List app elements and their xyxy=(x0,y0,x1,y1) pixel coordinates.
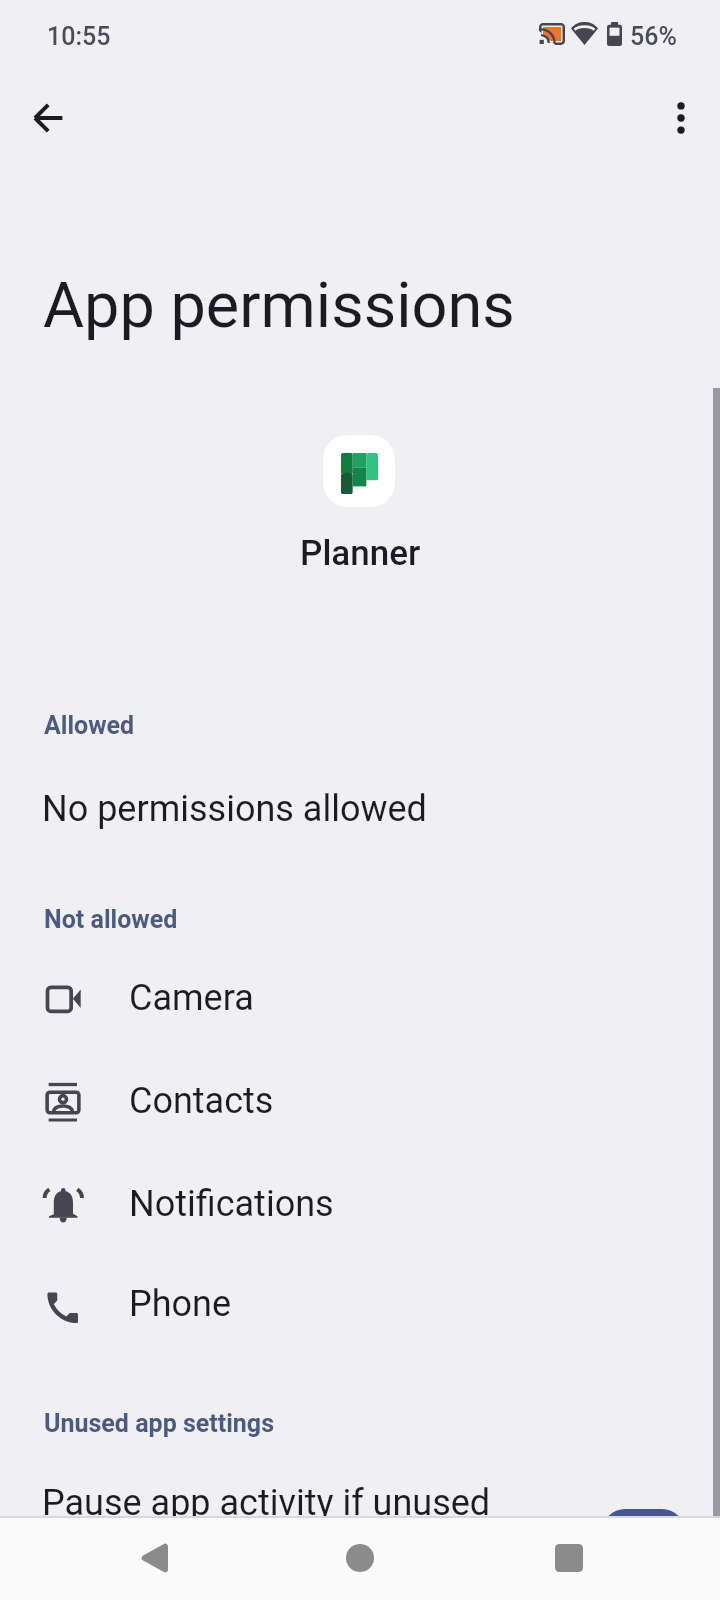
staticText: 10:55 xyxy=(47,22,111,51)
staticText: Phone xyxy=(129,1283,232,1325)
button[interactable]: Notifications xyxy=(0,1152,720,1255)
button[interactable]: More options xyxy=(645,82,717,154)
button[interactable]: Navigate up xyxy=(13,82,85,154)
staticText: Allowed xyxy=(44,711,135,740)
button[interactable]: Back xyxy=(116,1520,191,1595)
staticText: 56% xyxy=(630,22,677,51)
staticText: Unused app settings xyxy=(44,1409,274,1438)
button[interactable]: Phone xyxy=(0,1252,720,1355)
button[interactable]: No permissions allowed xyxy=(0,760,720,860)
button[interactable]: Home xyxy=(322,1520,397,1595)
button[interactable]: Camera xyxy=(0,946,720,1049)
staticText: App permissions xyxy=(43,269,515,343)
staticText: Pause app activity if unused xyxy=(42,1482,491,1524)
staticText: Planner xyxy=(300,533,421,574)
button[interactable]: Pause app activity if unused xyxy=(0,1455,720,1517)
staticText: Not allowed xyxy=(44,905,178,934)
staticText: Contacts xyxy=(129,1080,274,1122)
staticText: Notifications xyxy=(129,1183,334,1225)
staticText: No permissions allowed xyxy=(42,788,427,830)
button[interactable]: Recent apps xyxy=(531,1520,606,1595)
button[interactable]: Contacts xyxy=(0,1049,720,1152)
staticText: Camera xyxy=(129,977,254,1019)
